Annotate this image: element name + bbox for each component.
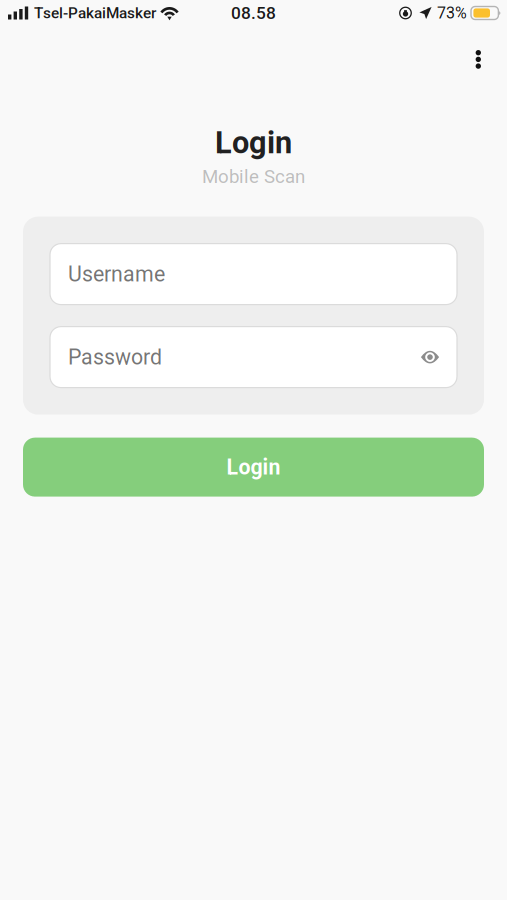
- button[interactable]: Login: [0, 438, 507, 497]
- staticText: Username: [68, 262, 165, 287]
- staticText: Mobile Scan: [202, 166, 305, 188]
- staticText: 73%: [437, 4, 467, 22]
- staticText: Password: [68, 345, 162, 370]
- button[interactable]: More options: [462, 25, 495, 72]
- staticText: Login: [215, 125, 292, 161]
- staticText: Tsel-PakaiMasker: [34, 4, 156, 22]
- staticText: 08.58: [231, 3, 276, 23]
- staticText: Login: [226, 455, 280, 480]
